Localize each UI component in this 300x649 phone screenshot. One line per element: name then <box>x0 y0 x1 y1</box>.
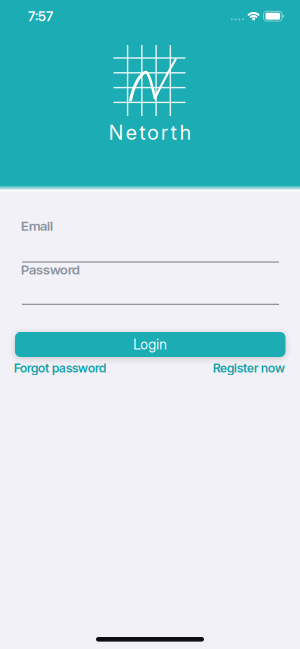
button[interactable]: Login <box>0 332 300 357</box>
staticText: Login <box>133 336 167 353</box>
staticText: Email <box>21 218 53 234</box>
staticText: Password <box>21 262 80 278</box>
staticText: Register now <box>213 361 285 375</box>
staticText: Netorth <box>109 120 191 145</box>
button[interactable]: Forgot password <box>14 361 106 375</box>
button[interactable]: Register now <box>213 361 285 375</box>
staticText: 7:57 <box>28 8 53 24</box>
staticText: Forgot password <box>14 361 106 375</box>
